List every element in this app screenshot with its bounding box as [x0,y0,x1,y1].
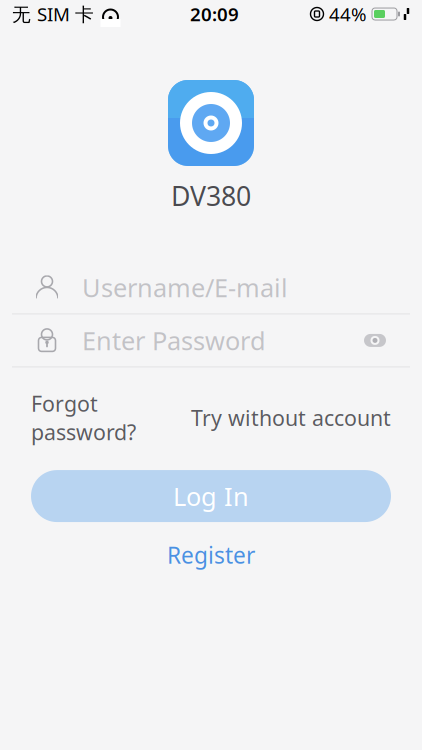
staticText: Log In [173,479,249,513]
staticText: 20:09 [190,2,239,26]
staticText: 44% [329,2,367,26]
button[interactable]: Try without account [191,404,391,432]
staticText: DV380 [171,178,251,213]
button[interactable]: Register [141,540,281,570]
staticText: Username/E-mail [82,271,288,304]
staticText: 无 SIM 卡 [12,2,94,26]
staticText: Forgot password? [31,389,136,446]
button[interactable]: Forgot password? [31,389,136,446]
button[interactable]: Log In [31,470,391,522]
staticText: Register [167,540,255,570]
staticText: Try without account [191,404,391,432]
staticText: Enter Password [82,324,266,357]
button[interactable]: Show password [358,323,392,357]
